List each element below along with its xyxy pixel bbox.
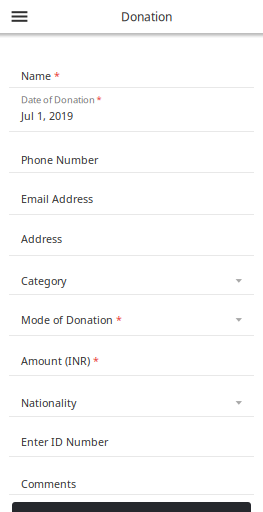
staticText: Email Address — [21, 192, 93, 206]
staticText: Name — [21, 69, 51, 83]
button[interactable]: Name — [0, 38, 263, 88]
staticText: Phone Number — [21, 153, 98, 167]
button[interactable]: Nationality — [0, 376, 263, 417]
staticText: Comments — [21, 477, 76, 491]
button[interactable]: Enter ID Number — [0, 417, 263, 457]
button[interactable]: Comments — [0, 457, 263, 495]
staticText: * — [54, 69, 60, 83]
staticText: Jul 1, 2019 — [21, 109, 73, 123]
button[interactable]: SAVE — [0, 502, 263, 512]
button[interactable]: Mode of Donation — [0, 295, 263, 336]
button[interactable]: Address — [0, 215, 263, 256]
staticText: * — [93, 354, 99, 368]
staticText: * — [116, 313, 122, 327]
staticText: Donation — [121, 8, 172, 24]
staticText: Date of Donation — [21, 93, 95, 106]
button[interactable]: Category — [0, 256, 263, 295]
staticText: Address — [21, 232, 62, 246]
staticText: Nationality — [21, 396, 76, 410]
staticText: * — [96, 93, 101, 106]
button[interactable]: Amount (INR) — [0, 336, 263, 376]
staticText: Mode of Donation — [21, 313, 113, 327]
button[interactable]: Email Address — [0, 173, 263, 215]
staticText: Category — [21, 274, 66, 288]
button[interactable]: Phone Number — [0, 132, 263, 173]
staticText: Enter ID Number — [21, 435, 108, 449]
staticText: Amount (INR) — [21, 354, 90, 368]
button[interactable]: Date of Donation — [0, 88, 263, 132]
button[interactable]: Menu — [0, 0, 39, 32]
